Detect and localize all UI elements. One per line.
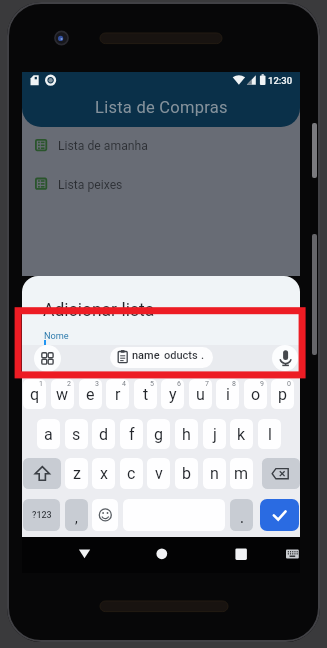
button[interactable]: q <box>23 379 46 409</box>
button[interactable]: z <box>65 458 88 489</box>
staticText: . <box>201 349 205 362</box>
button[interactable]: n <box>203 458 226 489</box>
button[interactable] <box>282 543 303 565</box>
button[interactable]: m <box>230 458 253 489</box>
staticText: g <box>154 425 163 444</box>
button[interactable]: i <box>216 379 239 409</box>
button[interactable]: o <box>244 379 267 409</box>
button[interactable]: t <box>134 379 157 409</box>
staticText: 6 <box>177 380 181 388</box>
button[interactable] <box>72 543 97 565</box>
staticText: 0 <box>287 380 291 388</box>
staticText: 3 <box>95 380 99 388</box>
button[interactable] <box>110 347 213 368</box>
button[interactable] <box>23 458 61 489</box>
button[interactable]: k <box>230 419 253 449</box>
staticText: i <box>226 385 230 404</box>
staticText: h <box>182 425 191 444</box>
staticText: 5 <box>150 380 154 388</box>
staticText: . <box>240 510 244 526</box>
staticText: 1 <box>39 380 43 388</box>
staticText: ?123 <box>32 510 52 521</box>
button[interactable]: l <box>258 419 281 449</box>
button[interactable]: g <box>147 419 170 449</box>
button[interactable]: r <box>106 379 129 409</box>
button[interactable]: f <box>120 419 143 449</box>
staticText: e <box>86 385 95 404</box>
button[interactable] <box>92 499 118 531</box>
staticText: t <box>143 385 149 404</box>
staticText: j <box>213 425 217 444</box>
staticText: n <box>210 464 219 483</box>
button[interactable]: w <box>51 379 74 409</box>
button[interactable]: v <box>147 458 170 489</box>
staticText: 12:30 <box>268 75 293 86</box>
staticText: 7 <box>205 380 209 388</box>
staticText: Adicionar lista <box>43 300 155 321</box>
staticText: Lista de amanha <box>58 139 148 153</box>
staticText: 4 <box>122 380 126 388</box>
staticText: 2 <box>67 380 71 388</box>
staticText: b <box>182 464 191 483</box>
staticText: y <box>169 385 177 404</box>
staticText: r <box>115 385 121 404</box>
button[interactable]: b <box>175 458 198 489</box>
button[interactable] <box>272 345 298 371</box>
button[interactable]: . <box>230 499 253 531</box>
staticText: q <box>30 385 40 404</box>
button[interactable]: h <box>175 419 198 449</box>
staticText: name <box>132 349 160 362</box>
button[interactable]: a <box>37 419 60 449</box>
button[interactable]: x <box>92 458 115 489</box>
button[interactable]: j <box>203 419 226 449</box>
button[interactable] <box>229 543 254 565</box>
button[interactable]: u <box>189 379 212 409</box>
staticText: p <box>278 385 287 404</box>
staticText: c <box>127 464 136 483</box>
staticText: o <box>251 385 261 404</box>
staticText: w <box>56 385 69 404</box>
staticText: k <box>237 425 246 444</box>
staticText: , <box>75 510 78 526</box>
staticText: l <box>268 425 272 444</box>
staticText: a <box>44 425 53 444</box>
button[interactable]: ?123 <box>23 499 60 531</box>
staticText: 9 <box>260 380 264 388</box>
button[interactable] <box>34 345 61 372</box>
button[interactable]: s <box>65 419 88 449</box>
staticText: u <box>196 385 205 404</box>
button[interactable] <box>22 131 300 161</box>
staticText: f <box>129 425 135 444</box>
staticText: x <box>100 464 108 483</box>
staticText: z <box>73 464 81 483</box>
staticText: m <box>234 464 249 483</box>
button[interactable] <box>149 543 174 565</box>
staticText: v <box>155 464 163 483</box>
button[interactable]: c <box>120 458 143 489</box>
button[interactable] <box>22 170 300 200</box>
button[interactable]: p <box>271 379 294 409</box>
staticText: Nome <box>44 330 69 341</box>
staticText: d <box>99 425 109 444</box>
staticText: s <box>72 425 81 444</box>
button[interactable]: y <box>161 379 184 409</box>
staticText: oducts <box>164 349 198 362</box>
staticText: Lista peixes <box>58 178 123 192</box>
button[interactable]: e <box>79 379 102 409</box>
button[interactable]: d <box>92 419 115 449</box>
button[interactable] <box>260 499 299 531</box>
button[interactable] <box>262 458 300 489</box>
staticText: 8 <box>232 380 236 388</box>
button[interactable]: , <box>65 499 88 531</box>
staticText: Lista de Compras <box>95 98 228 117</box>
